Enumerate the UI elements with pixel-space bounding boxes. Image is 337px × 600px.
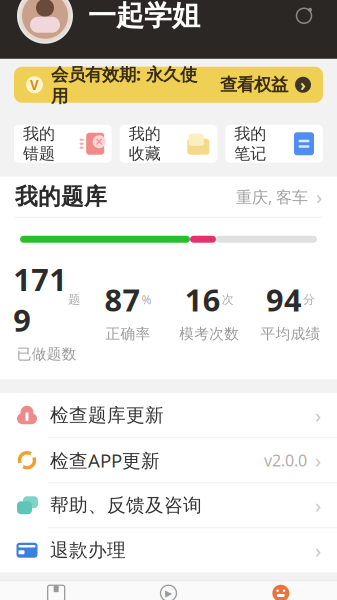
staticText: 我的收藏 [129,124,161,163]
staticText: 已做题数 [17,345,77,363]
staticText: 分 [303,292,315,307]
staticText: 查看权益 [220,74,288,95]
staticText: 会员有效期: 永久使用 [51,63,197,107]
staticText: › [315,402,321,429]
staticText: 一起学姐 [88,0,200,33]
staticText: V [30,76,39,94]
button[interactable]: 我的题库 [0,177,337,217]
button[interactable]: 我的错题 [14,125,112,163]
staticText: 重庆, 客车 [236,186,308,207]
staticText: › [300,74,306,95]
staticText: 16 [185,279,221,320]
staticText: › [315,537,321,564]
button[interactable]: 考试 [0,581,112,600]
staticText: 模考次数 [179,325,239,343]
staticText: 87 [104,279,140,320]
button[interactable]: V [14,67,323,103]
staticText: 检查题库更新 [50,404,164,427]
staticText: % [141,291,151,307]
button[interactable]: 检查APP更新 [0,438,337,482]
button[interactable]: 退款办理 [0,528,337,572]
staticText: 题 [68,292,80,307]
staticText: v2.0.0 [264,450,307,471]
staticText: 帮助、反馈及咨询 [50,494,202,517]
staticText: 平均成绩 [260,325,320,343]
button[interactable]: Profile photo [18,0,72,43]
staticText: 1719 [13,259,67,340]
button[interactable]: 帮助、反馈及咨询 [0,483,337,527]
staticText: ✕ [95,136,104,148]
button[interactable]: 我的收藏 [120,125,217,163]
button[interactable]: Refresh [289,1,319,31]
staticText: 正确率 [105,325,150,343]
button[interactable]: ▶ [112,581,225,600]
staticText: 我的笔记 [234,124,266,163]
staticText: › [315,492,321,519]
staticText: 我的错题 [23,124,55,163]
staticText: 94 [266,279,302,320]
button[interactable]: 我的笔记 [225,125,323,163]
staticText: 退款办理 [50,539,126,562]
staticText: › [315,447,321,474]
button[interactable]: 检查题库更新 [0,393,337,437]
staticText: ▶ [165,588,172,598]
staticText: › [316,183,322,210]
staticText: 检查APP更新 [50,448,160,473]
staticText: 我的题库 [15,183,107,211]
button[interactable]: 我的 [225,581,337,600]
staticText: 次 [222,292,234,307]
